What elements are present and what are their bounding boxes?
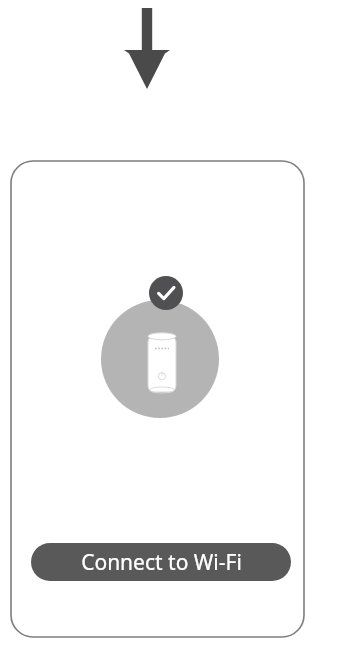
- staticText: Connect to Wi-Fi: [81, 548, 242, 577]
- button[interactable]: Connect to Wi-Fi: [31, 543, 291, 581]
